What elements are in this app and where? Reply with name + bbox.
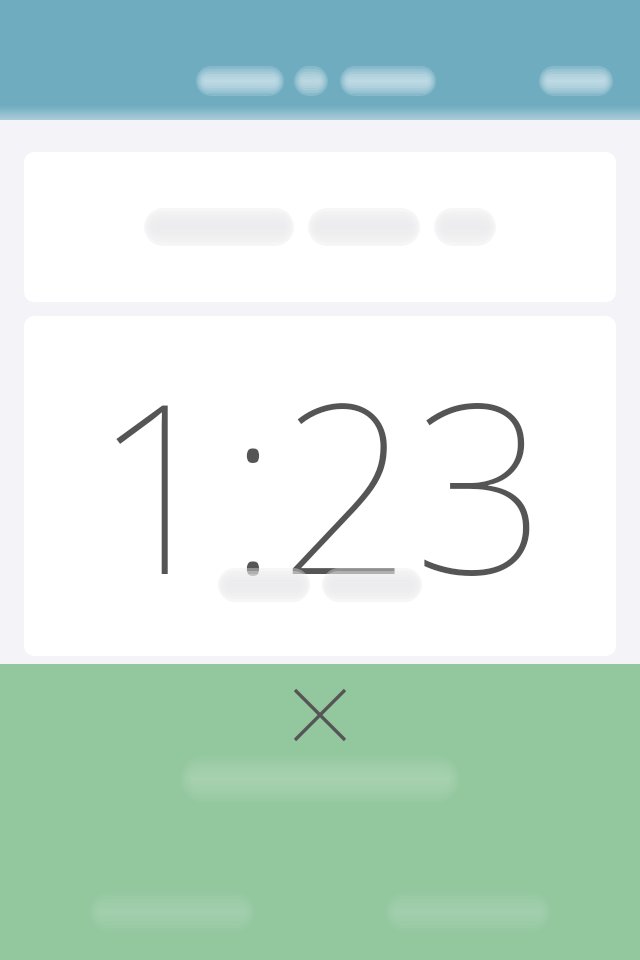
staticText: 1:23 [24, 322, 616, 643]
button[interactable]: Dismiss [275, 670, 365, 760]
button[interactable] [24, 152, 616, 302]
button[interactable]: 1:23 [24, 316, 616, 656]
button[interactable]: Action [528, 56, 624, 106]
